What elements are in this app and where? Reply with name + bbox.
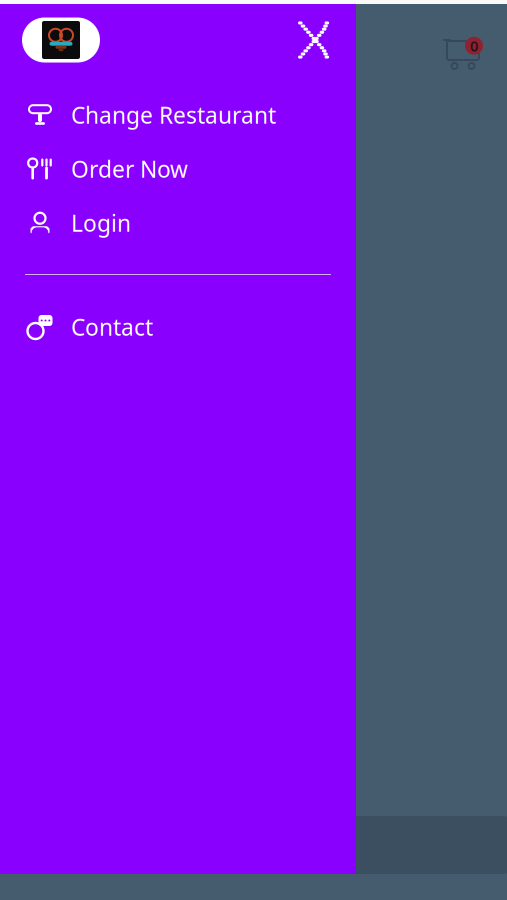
button[interactable]: Close menu <box>292 16 340 64</box>
button[interactable]: Order Now <box>0 142 356 196</box>
button[interactable]: Login <box>0 196 356 250</box>
staticText: Contact <box>71 312 153 342</box>
button[interactable]: Restaurant logo <box>22 17 100 62</box>
button[interactable]: Change Restaurant <box>0 88 356 142</box>
staticText: Order Now <box>71 154 188 184</box>
button[interactable]: Cart <box>433 26 493 82</box>
staticText: 0 <box>470 36 478 55</box>
staticText: Login <box>71 208 131 238</box>
staticText: Change Restaurant <box>71 100 276 130</box>
button[interactable]: Contact <box>0 300 356 354</box>
